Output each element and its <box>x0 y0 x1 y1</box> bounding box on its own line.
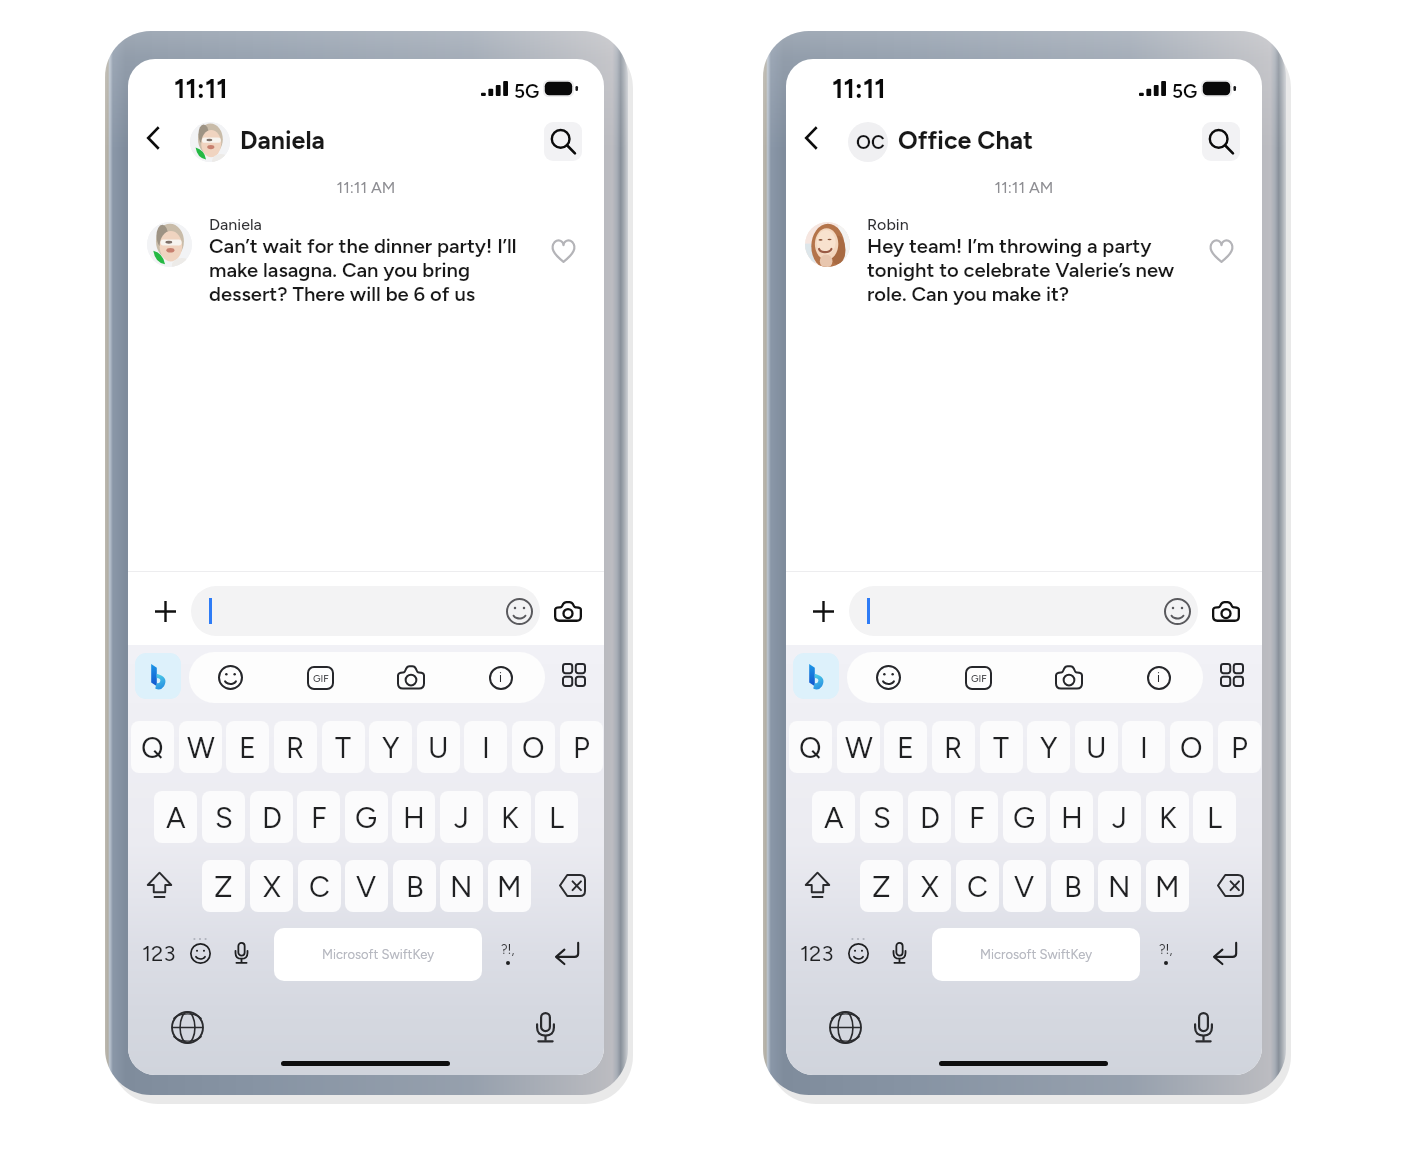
button[interactable]: ?!, <box>486 929 530 977</box>
button[interactable] <box>849 586 1198 636</box>
button[interactable]: S <box>860 791 903 843</box>
staticText: tonight to celebrate Valerie’s new <box>867 258 1175 282</box>
button[interactable]: Emoji <box>180 929 220 977</box>
button[interactable]: Add attachment <box>144 590 186 632</box>
button[interactable]: Emoji <box>209 656 252 699</box>
button[interactable]: Camera <box>389 656 432 699</box>
button[interactable]: Y <box>1027 721 1070 773</box>
button[interactable]: D <box>908 791 951 843</box>
button[interactable]: Bing <box>135 653 181 699</box>
button[interactable]: Q <box>131 721 174 773</box>
button[interactable]: R <box>932 721 975 773</box>
button[interactable]: 123 <box>794 929 840 977</box>
button[interactable]: T <box>980 721 1023 773</box>
button[interactable]: S <box>202 791 245 843</box>
button[interactable]: Like <box>1199 229 1243 273</box>
button[interactable]: U <box>1075 721 1118 773</box>
button[interactable]: V <box>345 860 388 912</box>
button[interactable]: Dictate <box>221 929 261 977</box>
staticText: M <box>497 869 522 904</box>
button[interactable]: E <box>884 721 927 773</box>
button[interactable]: K <box>488 791 531 843</box>
button[interactable]: Shift <box>136 862 182 908</box>
button[interactable]: Emoji <box>867 656 910 699</box>
button[interactable]: Z <box>202 860 245 912</box>
button[interactable]: N <box>1098 860 1141 912</box>
button[interactable]: H <box>1050 791 1093 843</box>
button[interactable]: Dictate <box>879 929 919 977</box>
button[interactable]: Search <box>544 122 582 161</box>
button[interactable]: Enter <box>544 929 590 977</box>
button[interactable]: M <box>488 860 531 912</box>
button[interactable]: A <box>154 791 197 843</box>
button[interactable]: R <box>274 721 317 773</box>
button[interactable]: P <box>1218 721 1261 773</box>
button[interactable]: J <box>1098 791 1141 843</box>
button[interactable]: C <box>298 860 341 912</box>
button[interactable]: Back <box>133 118 173 158</box>
button[interactable]: Camera <box>547 590 589 632</box>
button[interactable]: Microsoft SwiftKey <box>932 928 1140 981</box>
button[interactable]: P <box>560 721 603 773</box>
button[interactable]: W <box>837 721 880 773</box>
button[interactable]: W <box>179 721 222 773</box>
button[interactable]: Camera <box>1205 590 1247 632</box>
button[interactable]: V <box>1003 860 1046 912</box>
button[interactable]: ?!, <box>1144 929 1188 977</box>
button[interactable]: Emoji <box>838 929 878 977</box>
button[interactable]: Backspace <box>1207 862 1253 908</box>
button[interactable]: O <box>512 721 555 773</box>
button[interactable]: Change language <box>166 1006 209 1049</box>
button[interactable]: T <box>322 721 365 773</box>
button[interactable]: Back <box>791 118 831 158</box>
button[interactable]: GIF <box>299 656 342 699</box>
button[interactable]: Q <box>789 721 832 773</box>
button[interactable]: B <box>393 860 436 912</box>
button[interactable]: Y <box>369 721 412 773</box>
button[interactable]: I <box>464 721 507 773</box>
button[interactable]: Search <box>1202 122 1240 161</box>
button[interactable]: C <box>956 860 999 912</box>
button[interactable]: Change language <box>824 1006 867 1049</box>
button[interactable]: M <box>1146 860 1189 912</box>
button[interactable]: L <box>1193 791 1236 843</box>
button[interactable]: Enter <box>1202 929 1248 977</box>
button[interactable]: X <box>908 860 951 912</box>
staticText: X <box>263 869 281 904</box>
button[interactable]: 123 <box>136 929 182 977</box>
button[interactable]: F <box>955 791 998 843</box>
button[interactable]: K <box>1146 791 1189 843</box>
button[interactable]: B <box>1051 860 1094 912</box>
button[interactable]: A <box>812 791 855 843</box>
button[interactable]: More keyboard options <box>552 653 596 697</box>
button[interactable]: G <box>345 791 388 843</box>
button[interactable]: Info <box>479 656 522 699</box>
button[interactable]: U <box>417 721 460 773</box>
button[interactable]: G <box>1003 791 1046 843</box>
button[interactable]: L <box>535 791 578 843</box>
button[interactable]: More keyboard options <box>1210 653 1254 697</box>
button[interactable]: Bing <box>793 653 839 699</box>
button[interactable]: Info <box>1137 656 1180 699</box>
button[interactable]: Like <box>541 229 585 273</box>
button[interactable]: H <box>392 791 435 843</box>
button[interactable]: Microsoft SwiftKey <box>274 928 482 981</box>
button[interactable]: N <box>440 860 483 912</box>
button[interactable]: X <box>250 860 293 912</box>
button[interactable]: GIF <box>957 656 1000 699</box>
button[interactable]: D <box>250 791 293 843</box>
button[interactable]: Add attachment <box>802 590 844 632</box>
button[interactable]: Camera <box>1047 656 1090 699</box>
button[interactable]: Z <box>860 860 903 912</box>
button[interactable]: Voice input <box>524 1006 567 1049</box>
button[interactable]: J <box>440 791 483 843</box>
button[interactable]: O <box>1170 721 1213 773</box>
button[interactable]: E <box>226 721 269 773</box>
button[interactable]: Backspace <box>549 862 595 908</box>
button[interactable]: Shift <box>794 862 840 908</box>
button[interactable]: F <box>297 791 340 843</box>
staticText: W <box>187 730 215 765</box>
button[interactable]: Voice input <box>1182 1006 1225 1049</box>
button[interactable]: I <box>1122 721 1165 773</box>
button[interactable] <box>191 586 540 636</box>
